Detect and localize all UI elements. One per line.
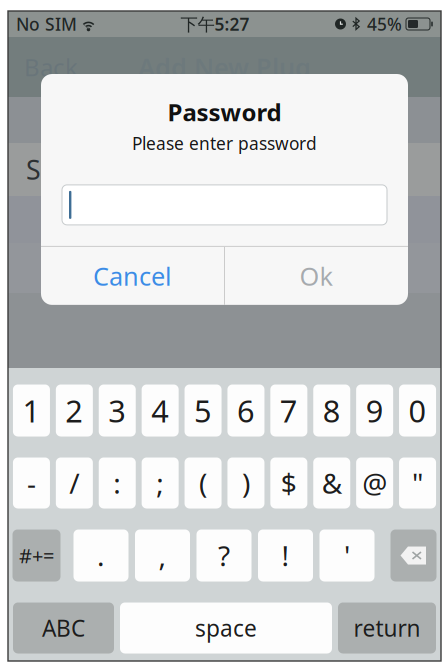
staticText: / [69, 464, 79, 502]
staticText: 45% [367, 12, 402, 35]
staticText: space [195, 613, 257, 643]
button[interactable]: ' [319, 529, 374, 581]
button[interactable]: ( [184, 457, 221, 508]
button[interactable]: Ok [225, 247, 408, 305]
staticText: 5 [194, 390, 212, 431]
staticText: 下午5:27 [180, 12, 249, 35]
button[interactable]: ) [227, 457, 264, 508]
button[interactable]: $ [270, 457, 307, 508]
button[interactable]: - [13, 457, 50, 508]
button[interactable]: : [99, 457, 136, 508]
staticText: 6 [237, 390, 255, 431]
button[interactable]: / [56, 457, 93, 508]
button[interactable]: 4 [142, 384, 179, 436]
staticText: - [27, 464, 36, 502]
staticText: 4 [151, 390, 169, 431]
staticText: $ [281, 464, 297, 502]
button[interactable]: , [135, 529, 190, 581]
staticText: ! [281, 537, 289, 574]
staticText: Password [167, 96, 281, 128]
button[interactable]: ! [258, 529, 313, 581]
staticText: Add New Plug [138, 50, 311, 84]
staticText: " [412, 464, 423, 502]
button[interactable]: @ [356, 457, 393, 508]
button[interactable]: Delete [390, 529, 436, 581]
staticText: return [353, 613, 420, 643]
staticText: S [26, 152, 41, 187]
button[interactable]: 7 [270, 384, 307, 436]
button[interactable]: Back [8, 45, 94, 89]
staticText: : [113, 464, 121, 502]
button[interactable]: 5 [184, 384, 221, 436]
staticText: ; [156, 464, 164, 502]
button[interactable]: return [338, 602, 436, 653]
staticText: ? [218, 537, 230, 574]
button[interactable]: " [399, 457, 436, 508]
staticText: ABC [42, 613, 85, 643]
button[interactable]: ; [142, 457, 179, 508]
button[interactable]: . [73, 529, 128, 581]
button[interactable]: 9 [356, 384, 393, 436]
button[interactable]: space [120, 602, 332, 653]
button[interactable]: ABC [13, 602, 114, 653]
staticText: Ok [299, 259, 333, 293]
staticText: 8 [323, 390, 341, 431]
staticText: , [158, 537, 166, 574]
button[interactable]: 3 [99, 384, 136, 436]
button[interactable]: & [313, 457, 350, 508]
staticText: Please enter password [132, 132, 317, 155]
staticText: #+= [19, 542, 54, 569]
staticText: 3 [108, 390, 126, 431]
button[interactable]: 8 [313, 384, 350, 436]
staticText: 1 [22, 390, 40, 431]
staticText: Back [24, 51, 78, 83]
staticText: No SIM [16, 12, 77, 35]
staticText: 9 [366, 390, 384, 431]
staticText: Cancel [93, 259, 172, 293]
staticText: & [322, 464, 342, 502]
staticText: . [97, 537, 105, 574]
staticText: 0 [408, 390, 426, 431]
staticText: ' [344, 537, 350, 574]
staticText: @ [362, 464, 387, 502]
button[interactable]: 2 [56, 384, 93, 436]
button[interactable]: Cancel [41, 247, 224, 305]
button[interactable]: 6 [227, 384, 264, 436]
button[interactable]: ? [196, 529, 251, 581]
staticText: ) [242, 464, 250, 502]
button[interactable]: 1 [13, 384, 50, 436]
staticText: ( [199, 464, 207, 502]
button[interactable]: 0 [399, 384, 436, 436]
staticText: 2 [65, 390, 83, 431]
button[interactable]: #+= [12, 529, 60, 581]
staticText: 7 [280, 390, 298, 431]
